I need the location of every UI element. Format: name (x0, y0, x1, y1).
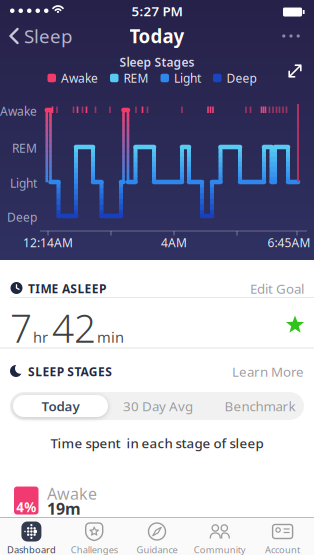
staticText: Community (194, 543, 246, 555)
staticText: Edit Goal (250, 280, 304, 297)
button[interactable]: Benchmark (213, 392, 307, 420)
button[interactable] (286, 62, 304, 80)
staticText: Guidance (136, 543, 177, 555)
staticText: Sleep Stages (119, 54, 194, 70)
staticText: Today (129, 24, 184, 48)
button[interactable]: Guidance (126, 517, 188, 555)
staticText: 6:45AM (267, 234, 310, 250)
staticText: Deep (226, 70, 256, 86)
staticText: 7 (10, 302, 32, 353)
staticText: Learn More (232, 363, 304, 380)
staticText: REM (123, 70, 148, 86)
staticText: Account (265, 543, 300, 555)
button[interactable] (282, 34, 300, 38)
button[interactable]: 30 Day Avg (111, 392, 205, 420)
button[interactable]: Today (13, 395, 108, 417)
staticText: Light (174, 70, 201, 86)
staticText: Challenges (71, 543, 118, 555)
staticText: Awake (61, 70, 98, 86)
button[interactable]: Learn More (224, 363, 304, 380)
button[interactable]: Challenges (63, 517, 125, 555)
staticText: 5:27 PM (131, 2, 182, 20)
staticText: min (97, 327, 124, 347)
staticText: 42 (52, 302, 96, 353)
button[interactable]: Community (189, 517, 251, 555)
staticText: 4AM (161, 234, 187, 250)
staticText: SLEEP STAGES (28, 363, 112, 379)
staticText: 19m (47, 498, 81, 519)
staticText: 4% (16, 498, 36, 516)
staticText: Light (10, 175, 37, 191)
staticText: Benchmark (224, 397, 295, 415)
button[interactable]: Edit Goal (234, 280, 304, 297)
button[interactable]: Sleep (0, 0, 74, 52)
staticText: 30 Day Avg (123, 397, 193, 415)
staticText: Time spent in each stage of sleep (50, 434, 263, 452)
staticText: Sleep (24, 24, 72, 48)
staticText: Dashboard (7, 543, 56, 555)
staticText: hr (33, 327, 48, 347)
staticText: Deep (7, 209, 37, 225)
button[interactable]: Account (252, 517, 314, 555)
staticText: 12:14AM (23, 234, 73, 250)
staticText: TIME ASLEEP (28, 280, 106, 296)
staticText: Today (41, 397, 79, 415)
staticText: Awake (0, 103, 37, 119)
staticText: Awake (47, 483, 97, 504)
button[interactable]: Dashboard (0, 517, 62, 555)
staticText: REM (12, 140, 37, 156)
